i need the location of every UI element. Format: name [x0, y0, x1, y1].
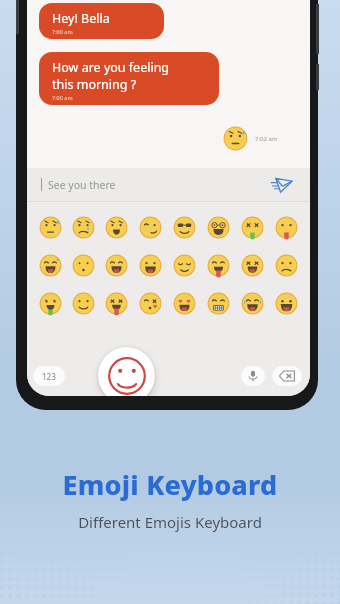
button[interactable]: Emoji [269, 252, 303, 278]
button[interactable]: Emoji [201, 290, 235, 316]
button[interactable]: Emoji [167, 252, 201, 278]
staticText: 7:00 am [52, 28, 154, 35]
button[interactable]: Emoji [34, 252, 67, 278]
button[interactable]: How are you feeling [39, 52, 219, 105]
button[interactable]: Emoji [100, 214, 133, 240]
staticText: Different Emojis Keyboard [0, 512, 340, 532]
button[interactable]: Emoji [67, 290, 100, 316]
button[interactable]: Emoji [133, 290, 167, 316]
button[interactable]: Emoji [235, 252, 269, 278]
button[interactable]: Emoji [167, 290, 201, 316]
button[interactable]: Emoji [100, 290, 133, 316]
button[interactable]: See you there [27, 168, 310, 201]
button[interactable]: Emoji [133, 214, 167, 240]
button[interactable]: Emoji [235, 290, 269, 316]
staticText: Emoji Keyboard [0, 466, 340, 503]
button[interactable]: Emoji [34, 214, 67, 240]
staticText: Hey! Bella [52, 10, 110, 27]
staticText: 7:02 am [255, 135, 278, 143]
button[interactable]: Send message [267, 170, 297, 200]
button[interactable]: Emoji [67, 252, 100, 278]
button[interactable]: Emoji [100, 252, 133, 278]
button[interactable]: Emoji [201, 252, 235, 278]
staticText: How are you feeling [52, 59, 170, 76]
button[interactable]: Emoji [34, 290, 67, 316]
button[interactable]: 123 [33, 366, 65, 386]
staticText: 7:00 am [52, 94, 209, 101]
button[interactable]: Emoji [235, 214, 269, 240]
staticText: See you there [48, 178, 116, 192]
button[interactable]: Backspace [272, 366, 302, 386]
button[interactable]: Emoji [67, 214, 100, 240]
button[interactable]: Open emoji keyboard [98, 347, 155, 396]
button[interactable]: Emoji [167, 214, 201, 240]
button[interactable]: Emoji [269, 290, 303, 316]
button[interactable]: Voice input [241, 366, 265, 386]
button[interactable]: Hey! Bella [39, 3, 164, 39]
staticText: 123 [42, 371, 56, 382]
button[interactable]: Emoji [269, 214, 303, 240]
button[interactable]: Emoji [133, 252, 167, 278]
staticText: this morning ? [52, 76, 137, 93]
button[interactable]: Emoji [201, 214, 235, 240]
